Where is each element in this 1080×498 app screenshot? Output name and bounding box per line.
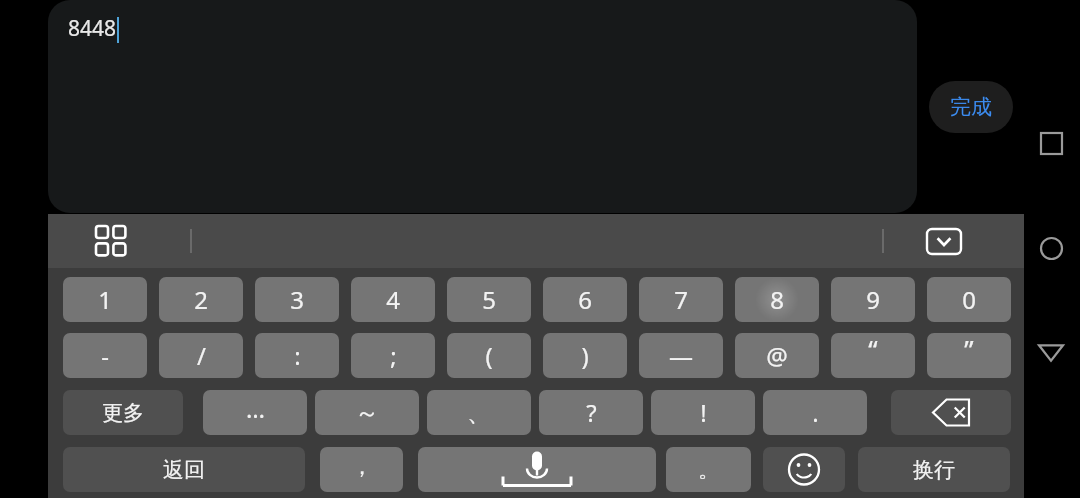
button[interactable]: Keyboard layouts [92,222,130,260]
button[interactable]: 换行 [858,447,1010,492]
staticText: 换行 [913,457,955,483]
button[interactable]: Backspace [891,390,1011,435]
staticText: / [197,339,206,372]
button[interactable]: 8448 [48,0,917,213]
staticText: ! [700,396,707,429]
button[interactable]: ” [927,333,1011,378]
button[interactable]: @ [735,333,819,378]
button[interactable]: 6 [543,277,627,322]
staticText: @ [766,339,788,372]
staticText: 4 [386,283,400,316]
button[interactable]: Hide keyboard [916,222,972,260]
button[interactable]: ? [539,390,643,435]
button[interactable]: … [203,390,307,435]
button[interactable]: 完成 [929,81,1013,133]
staticText: 0 [962,283,976,316]
staticText: ) [581,339,589,372]
staticText: 8448 [68,14,117,43]
staticText: “ [868,333,878,366]
button[interactable]: Back [1031,332,1071,372]
button[interactable]: 0 [927,277,1011,322]
staticText: 2 [194,283,208,316]
button[interactable]: 3 [255,277,339,322]
button[interactable]: - [63,333,147,378]
button[interactable]: ， [320,447,403,492]
staticText: 5 [482,283,496,316]
button[interactable]: Emoji [763,447,845,492]
button[interactable]: 4 [351,277,435,322]
button[interactable]: : [255,333,339,378]
button[interactable]: ～ [315,390,419,435]
staticText: ( [485,339,493,372]
button[interactable]: 5 [447,277,531,322]
button[interactable]: . [763,390,867,435]
button[interactable]: 8 [735,277,819,322]
staticText: ， [351,453,373,481]
staticText: 。 [698,456,720,484]
staticText: ; [390,339,397,372]
staticText: 3 [290,283,304,316]
button[interactable]: ( [447,333,531,378]
staticText: 9 [866,283,880,316]
staticText: ? [586,396,597,429]
button[interactable]: — [639,333,723,378]
staticText: ～ [355,398,379,428]
button[interactable]: ) [543,333,627,378]
button[interactable]: / [159,333,243,378]
button[interactable]: 更多 [63,390,183,435]
button[interactable]: ! [651,390,755,435]
button[interactable]: Space [418,447,656,492]
staticText: - [101,339,109,372]
button[interactable]: 7 [639,277,723,322]
staticText: . [812,396,819,429]
button[interactable]: 、 [427,390,531,435]
button[interactable]: ; [351,333,435,378]
button[interactable]: 返回 [63,447,305,492]
staticText: … [246,392,265,425]
button[interactable]: Recents [1031,123,1071,163]
button[interactable]: 9 [831,277,915,322]
button[interactable]: “ [831,333,915,378]
staticText: 、 [467,398,491,428]
staticText: 完成 [950,94,992,120]
staticText: 8 [770,283,784,316]
staticText: : [294,339,301,372]
button[interactable]: 。 [666,447,751,492]
staticText: 6 [578,283,592,316]
staticText: 返回 [163,457,205,483]
staticText: 7 [674,283,688,316]
button[interactable]: Home [1031,228,1071,268]
button[interactable]: 1 [63,277,147,322]
staticText: 更多 [102,400,144,426]
staticText: 1 [98,283,112,316]
staticText: — [669,339,693,372]
button[interactable]: 2 [159,277,243,322]
staticText: ” [964,333,974,366]
